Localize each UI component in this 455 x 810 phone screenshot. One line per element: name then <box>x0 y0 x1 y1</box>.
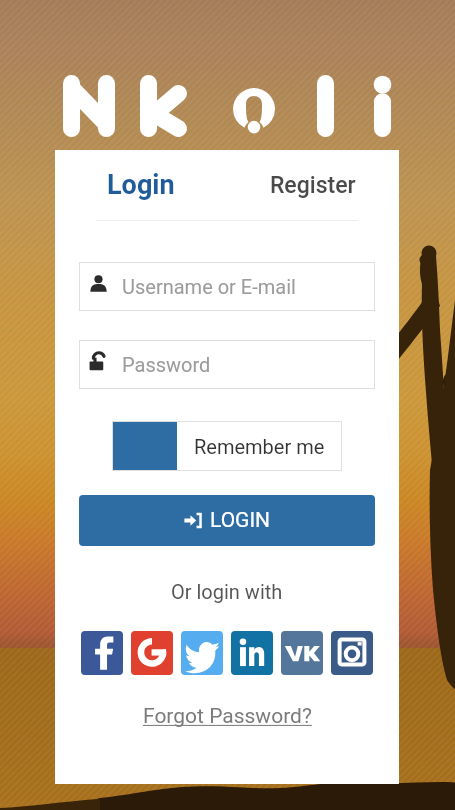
button[interactable]: LinkedIn <box>231 631 273 675</box>
button[interactable]: VK <box>281 631 323 675</box>
staticText: Register <box>270 172 356 199</box>
staticText: Forgot Password? <box>143 704 312 729</box>
button[interactable]: Instagram <box>331 631 373 675</box>
staticText: Login <box>107 169 175 201</box>
button[interactable]: Register <box>227 150 399 220</box>
button[interactable]: Username or E-mail <box>79 262 375 311</box>
staticText: Remember me <box>194 435 325 458</box>
button[interactable]: Login <box>55 150 227 220</box>
staticText: Password <box>122 353 211 376</box>
staticText: Username or E-mail <box>122 275 296 298</box>
button[interactable]: LOGIN <box>79 495 375 546</box>
button[interactable]: Google <box>131 631 173 675</box>
button[interactable]: Password <box>79 340 375 389</box>
button[interactable]: Remember me <box>112 421 342 471</box>
button[interactable]: Twitter <box>181 631 223 675</box>
button[interactable]: Facebook <box>81 631 123 675</box>
button[interactable]: Forgot Password? <box>143 704 312 729</box>
staticText: Or login with <box>171 580 283 603</box>
staticText: LOGIN <box>210 508 271 533</box>
